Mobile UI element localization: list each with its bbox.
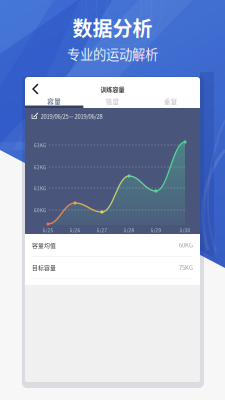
staticText: 训练容量 <box>100 85 124 93</box>
button[interactable]: 强度 <box>83 95 142 108</box>
staticText: 6/28 <box>123 227 134 234</box>
staticText: 容量均值 <box>32 241 56 249</box>
staticText: 6/29 <box>150 227 161 234</box>
button[interactable]: 目标容量 <box>25 256 200 278</box>
staticText: 63KG <box>34 142 46 149</box>
staticText: 60KG <box>34 207 46 214</box>
button[interactable]: 容量 <box>25 95 83 108</box>
staticText: 62KG <box>34 164 46 171</box>
staticText: 2019/06/25－2019/06/28 <box>40 112 102 120</box>
button[interactable]: 容量均值 <box>25 234 200 256</box>
staticText: 6/26 <box>69 227 80 234</box>
staticText: 目标容量 <box>32 263 56 272</box>
button[interactable]: 返回 <box>25 80 47 98</box>
staticText: 强度 <box>105 97 119 106</box>
staticText: 60KG <box>179 241 193 249</box>
staticText: 6/30 <box>179 227 190 234</box>
staticText: 61KG <box>34 185 46 192</box>
staticText: 75KG <box>179 263 193 272</box>
staticText: 6/27 <box>96 227 107 234</box>
button[interactable]: 重复 <box>142 95 200 108</box>
staticText: 容量 <box>47 97 61 106</box>
staticText: 数据分析 <box>72 13 152 42</box>
staticText: 重复 <box>164 97 178 106</box>
staticText: 专业的运动解析 <box>67 44 158 63</box>
staticText: 6/25 <box>42 227 53 234</box>
